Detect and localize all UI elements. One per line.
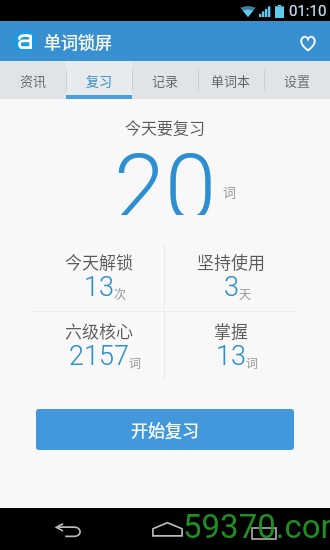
staticText: 掌握 [214,318,248,343]
staticText: 01:10 [289,2,327,20]
button[interactable]: Recents [216,508,316,550]
button[interactable]: Favorite [290,26,320,56]
staticText: 词 [223,182,237,201]
button[interactable]: 设置 [264,61,330,99]
staticText: 天 [239,285,252,302]
button[interactable]: 复习 [66,61,132,99]
staticText: 六级核心 [65,318,133,343]
staticText: 13 [216,340,246,372]
button[interactable]: 记录 [132,61,198,99]
staticText: 词 [246,354,259,371]
button[interactable]: 资讯 [0,61,66,99]
staticText: 复习 [86,71,113,90]
staticText: 59370.com [183,507,330,546]
staticText: 记录 [152,71,179,90]
staticText: 设置 [284,71,311,90]
staticText: 今天要复习 [0,115,330,138]
staticText: 开始复习 [131,417,199,442]
staticText: 20 [114,135,217,215]
staticText: 资讯 [20,71,47,90]
staticText: 坚持使用 [197,249,265,274]
staticText: 今天解锁 [65,249,133,274]
staticText: 2157 [69,340,129,372]
staticText: 3 [224,271,239,303]
button[interactable]: Back [16,508,116,550]
staticText: 单词本 [211,71,251,90]
staticText: 词 [129,354,142,371]
button[interactable]: 单词本 [198,61,264,99]
button[interactable]: Home [116,508,216,550]
staticText: 13 [84,271,114,303]
button[interactable]: 开始复习 [36,409,294,450]
staticText: 次 [114,285,127,302]
staticText: 单词锁屏 [44,29,112,54]
